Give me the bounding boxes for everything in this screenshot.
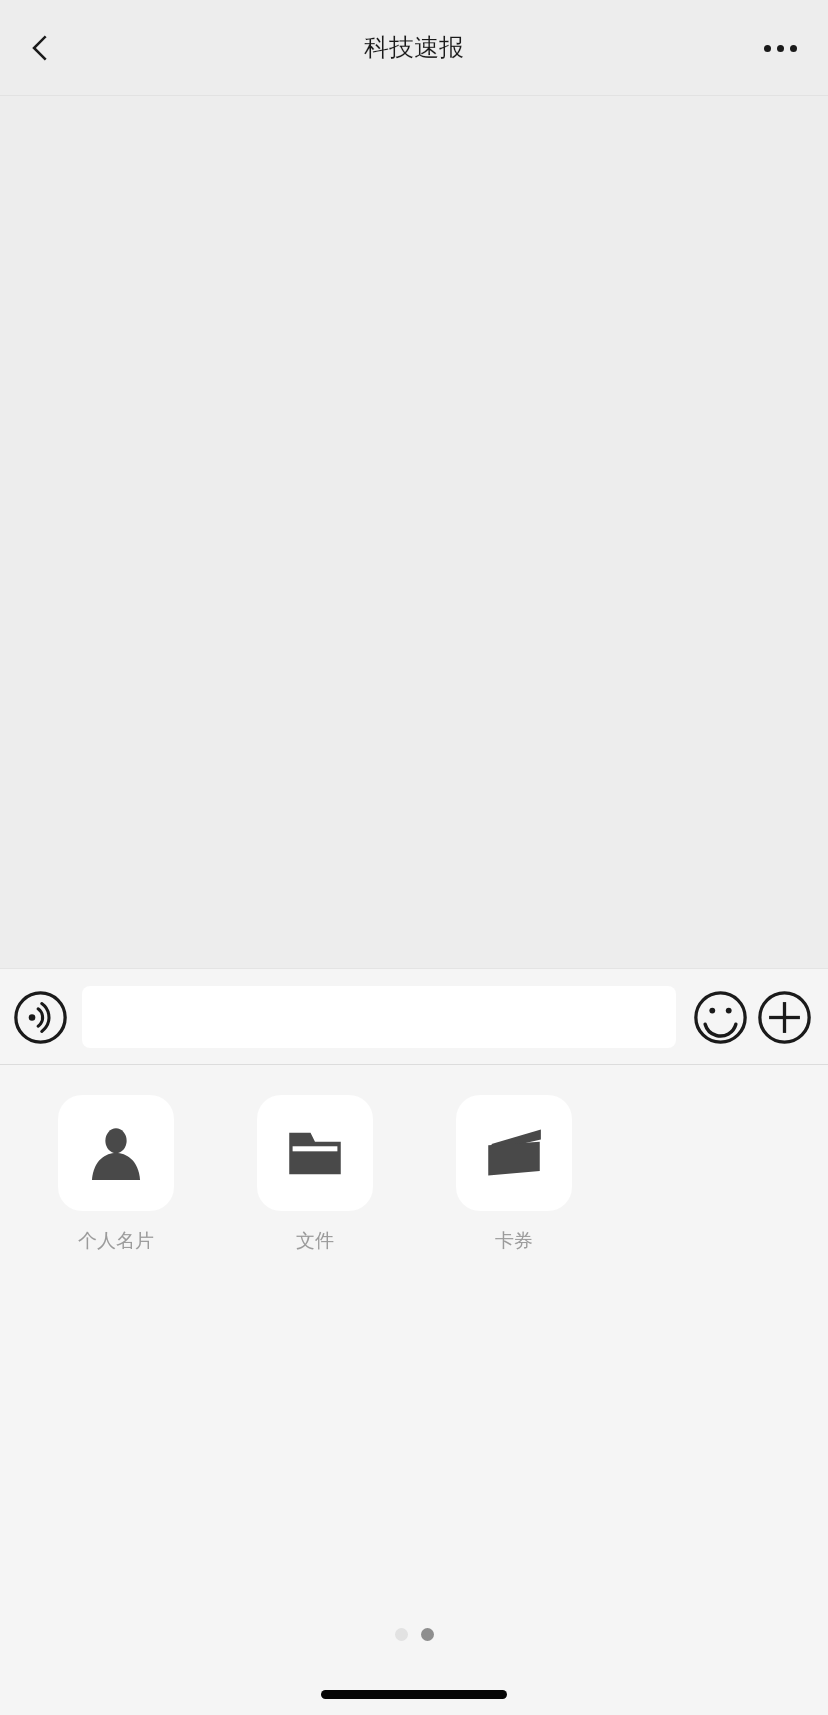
button[interactable]: More attachments xyxy=(754,987,814,1047)
staticText: 卡券 xyxy=(495,1229,533,1253)
button[interactable]: More options xyxy=(748,16,812,80)
button[interactable]: Back xyxy=(8,16,72,80)
button[interactable]: Voice input xyxy=(8,985,72,1049)
staticText: 个人名片 xyxy=(78,1229,154,1253)
staticText: 科技速报 xyxy=(364,32,464,63)
staticText: 文件 xyxy=(296,1229,334,1253)
button[interactable]: 卡券 xyxy=(414,1093,613,1255)
button[interactable]: 文件 xyxy=(215,1093,414,1255)
button[interactable]: 个人名片 xyxy=(16,1093,215,1255)
button[interactable]: Emoji xyxy=(690,987,750,1047)
